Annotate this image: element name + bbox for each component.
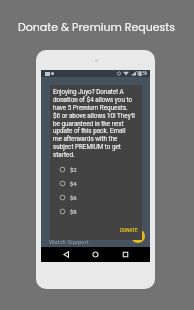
- button[interactable]: $6: [59, 190, 139, 204]
- button[interactable]: DONATE: [120, 228, 138, 233]
- button[interactable]: $8: [59, 204, 139, 218]
- staticText: started.: [53, 151, 75, 158]
- staticText: me afterwards with the: [53, 135, 118, 142]
- staticText: 15:56: [136, 71, 148, 76]
- staticText: $8: [70, 208, 77, 215]
- staticText: subject PREMIUM to get: [53, 143, 121, 150]
- staticText: Enjoying Juyo? Donate! A: [53, 88, 124, 95]
- button[interactable]: $4: [59, 176, 139, 190]
- staticText: donation of $4 allows you to: [53, 96, 133, 103]
- staticText: Watch Support: [49, 238, 89, 245]
- button[interactable]: Home: [91, 250, 100, 259]
- button[interactable]: $2: [59, 162, 139, 176]
- staticText: $6: [70, 194, 77, 201]
- button[interactable]: Add: [131, 229, 145, 243]
- staticText: update of this pack. Email: [53, 127, 126, 134]
- button[interactable]: Back: [62, 250, 71, 259]
- staticText: be guaranteed in the next: [53, 120, 124, 127]
- staticText: $4: [70, 180, 77, 187]
- staticText: DONATE: [120, 228, 138, 233]
- staticText: $2: [70, 166, 77, 173]
- staticText: $6 or above allows 10! They'll: [53, 112, 135, 119]
- staticText: Donate & Premium Requests: [18, 19, 176, 34]
- button[interactable]: Recents: [121, 250, 130, 259]
- staticText: have 5 Premium Requests.: [53, 104, 128, 111]
